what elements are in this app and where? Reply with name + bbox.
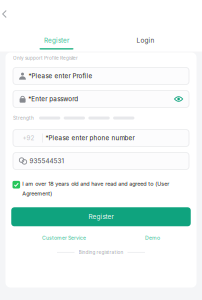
staticText: Demo xyxy=(145,235,160,241)
button[interactable]: Show password xyxy=(173,94,184,104)
button[interactable]: I am over 18 years old and have read and… xyxy=(12,180,189,197)
staticText: Customer Service xyxy=(42,235,86,241)
button[interactable]: Demo xyxy=(145,235,160,241)
staticText: 935544531 xyxy=(30,157,65,165)
staticText: Binding registration xyxy=(78,249,123,255)
staticText: *Enter password xyxy=(28,95,78,103)
button[interactable]: Login xyxy=(106,36,184,50)
staticText: Register xyxy=(88,213,113,221)
staticText: Strength xyxy=(13,115,34,121)
staticText: +92 xyxy=(22,134,34,142)
button[interactable]: Back xyxy=(0,6,14,22)
staticText: Only support Profile Register xyxy=(13,55,78,61)
staticText: *Please enter phone number xyxy=(45,134,134,142)
button[interactable]: Register xyxy=(11,207,191,226)
staticText: *Please enter Profile xyxy=(29,72,93,80)
staticText: Login xyxy=(136,36,154,44)
button[interactable]: Customer Service xyxy=(42,235,86,241)
staticText: Register xyxy=(44,36,69,44)
staticText: I am over 18 years old and have read and… xyxy=(22,180,169,197)
button[interactable]: Register xyxy=(17,36,95,50)
